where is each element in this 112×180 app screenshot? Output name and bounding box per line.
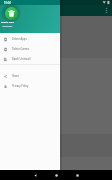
button[interactable]: Delete Apps <box>0 34 60 44</box>
staticText: Privacy Policy <box>12 84 29 88</box>
button[interactable]: Share <box>0 71 60 81</box>
staticText: 10:04 <box>4 1 11 5</box>
button[interactable]: Privacy Policy <box>0 81 60 91</box>
button[interactable]: Home <box>51 170 61 180</box>
button[interactable]: More options <box>102 6 111 15</box>
staticText: Uninstaller <box>2 25 13 28</box>
button[interactable]: Batch Uninstall <box>0 54 60 64</box>
staticText: Delete Apps <box>12 37 27 41</box>
staticText: Delete Games <box>12 47 30 51</box>
button[interactable]: Recents <box>72 170 82 180</box>
button[interactable]: Delete Games <box>0 44 60 54</box>
staticText: Batch Uninstall <box>12 57 31 61</box>
staticText: Delete Apps <box>1 21 15 24</box>
button[interactable]: Back <box>30 170 40 180</box>
staticText: Share <box>12 74 19 78</box>
